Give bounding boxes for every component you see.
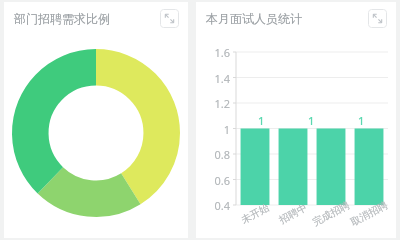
staticText: 1.2 — [214, 96, 230, 111]
staticText: 1 — [258, 113, 265, 128]
staticText: 1 — [308, 113, 315, 128]
staticText: 0.4 — [214, 198, 230, 213]
staticText: 本月面试人员统计 — [206, 11, 302, 26]
staticText: 部门招聘需求比例 — [14, 11, 110, 26]
staticText: 招聘中 — [277, 201, 309, 226]
staticText: 完成招聘 — [310, 198, 352, 229]
staticText: 0.6 — [214, 173, 230, 188]
button[interactable]: 全屏显示 — [368, 9, 387, 28]
staticText: 取消招聘 — [348, 198, 390, 229]
staticText: 1.4 — [214, 71, 230, 86]
staticText: 1.6 — [214, 45, 230, 60]
staticText: 未开始 — [239, 201, 271, 226]
button[interactable]: 全屏显示 — [160, 9, 179, 28]
staticText: 0.8 — [214, 147, 230, 162]
staticText: 1 — [223, 122, 230, 137]
staticText: 1 — [358, 113, 365, 128]
